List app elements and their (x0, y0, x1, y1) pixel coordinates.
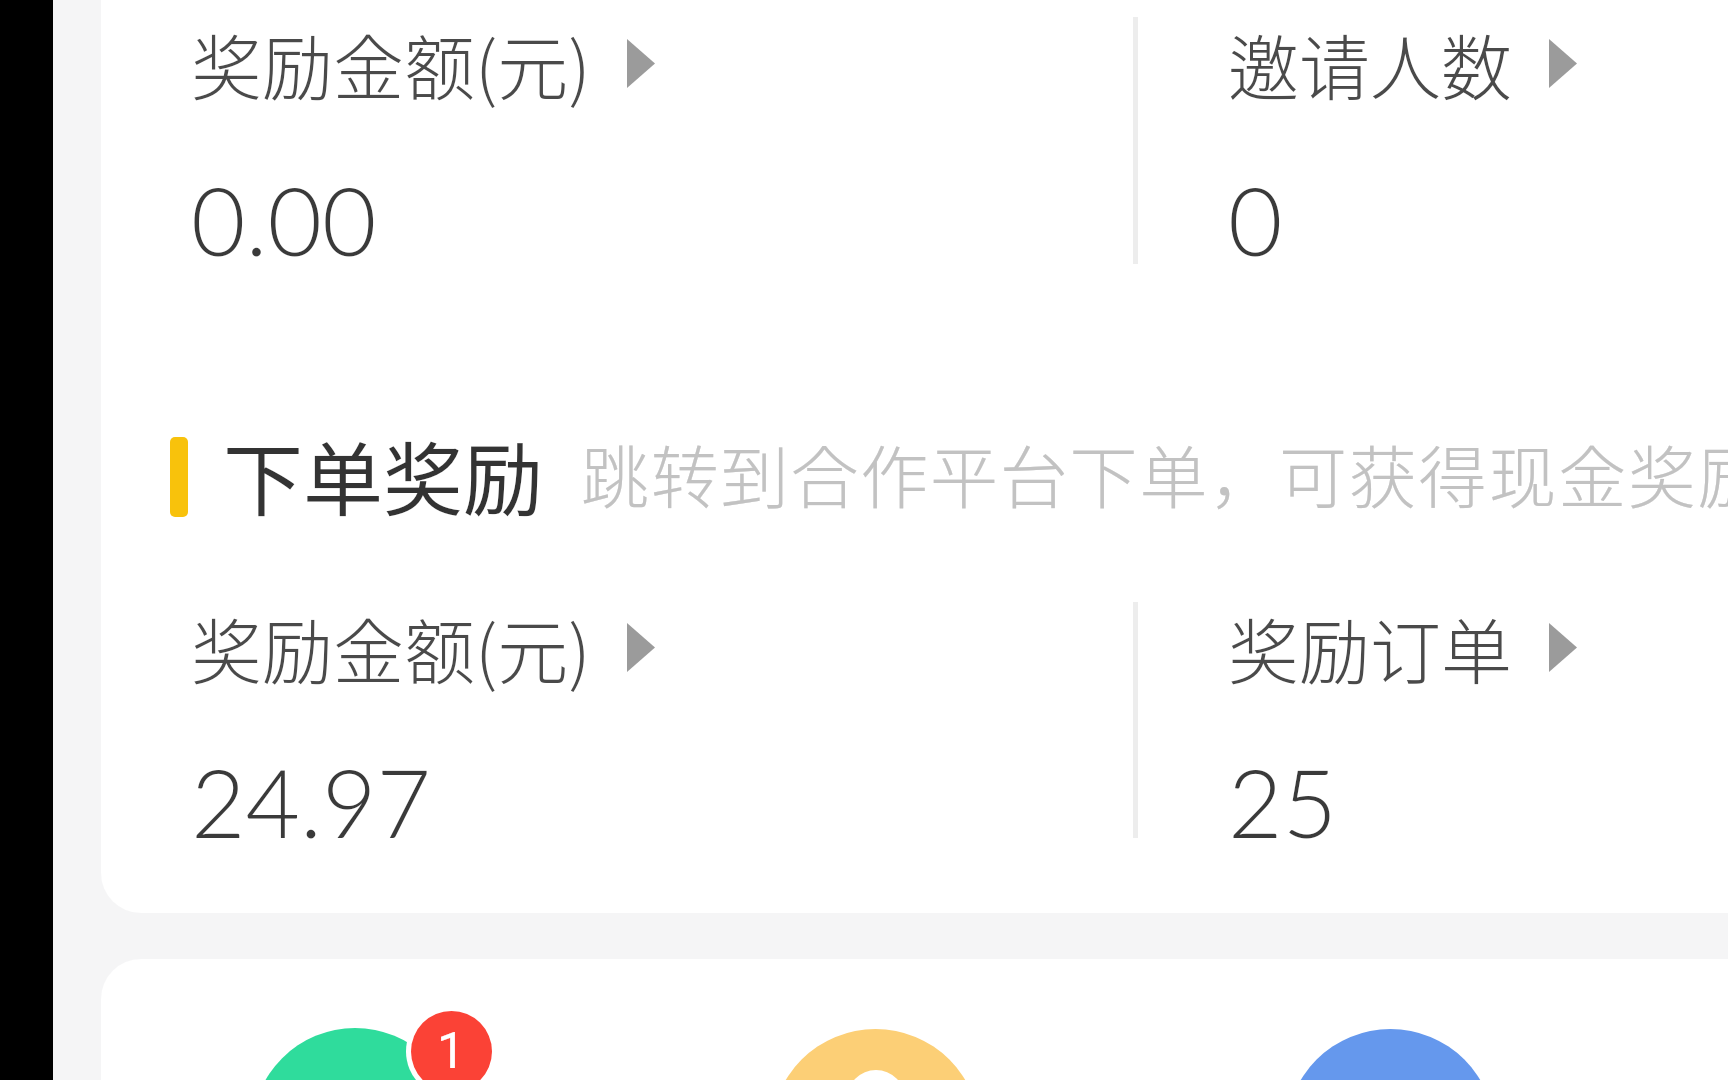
button[interactable]: 微信好友 (252, 1028, 458, 1080)
button[interactable]: 查看奖励金额 (191, 596, 711, 875)
staticText: 24.97 (191, 745, 432, 858)
button[interactable]: QQ好友 (1286, 1029, 1495, 1080)
staticText: 0 (1228, 163, 1283, 276)
staticText: 跳转到合作平台下单，可获得现金奖励 (581, 424, 1728, 522)
staticText: 1 (437, 1022, 466, 1080)
staticText: 邀请人数 (1228, 12, 1513, 115)
button[interactable]: 朋友圈 (771, 1029, 980, 1080)
button[interactable]: 查看奖励金额 (191, 12, 711, 293)
staticText: 奖励订单 (1228, 596, 1513, 699)
button[interactable]: 查看奖励订单 (1228, 596, 1728, 875)
staticText: 下单奖励 (223, 416, 543, 532)
staticText: 0.00 (191, 163, 377, 276)
staticText: 奖励金额(元) (191, 596, 591, 699)
staticText: 25 (1228, 745, 1338, 858)
button[interactable]: 查看邀请人数 (1228, 12, 1728, 293)
staticText: 奖励金额(元) (191, 12, 591, 115)
